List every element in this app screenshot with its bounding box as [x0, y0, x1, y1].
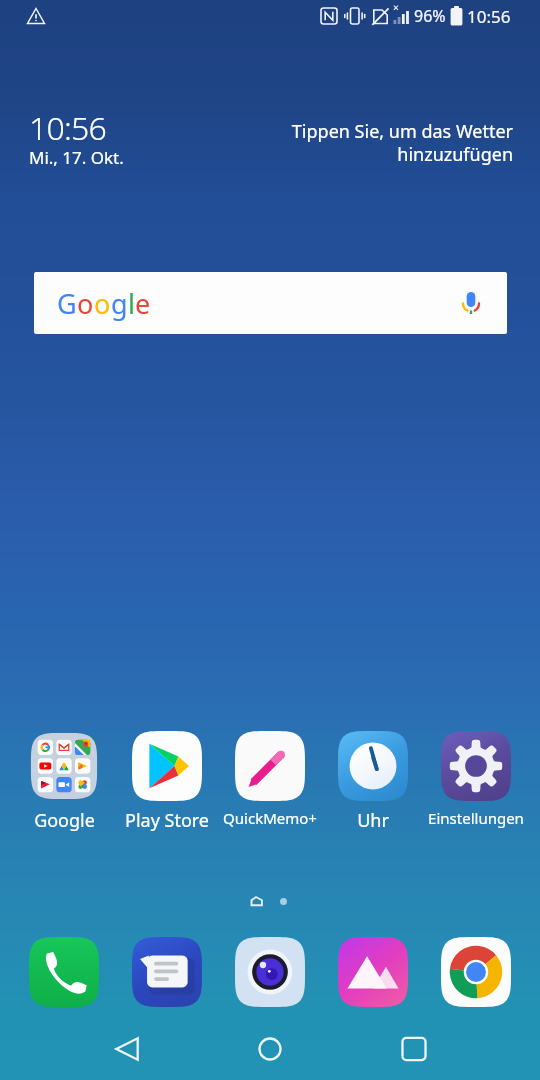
staticText: Google — [34, 808, 95, 830]
button[interactable]: Chrome — [426, 937, 526, 1007]
button[interactable]: Back — [95, 1018, 159, 1080]
staticText: QuickMemo+ — [223, 808, 317, 828]
button[interactable]: Camera — [220, 937, 320, 1007]
button[interactable]: Recents — [382, 1018, 446, 1080]
button[interactable]: QuickMemo+ — [220, 731, 320, 830]
staticText: Uhr — [357, 808, 389, 830]
button[interactable]: Tippen Sie, um das Wetter hinzuzufügen — [253, 119, 513, 166]
staticText: Einstellungen — [428, 808, 524, 828]
button[interactable]: 10:56 — [29, 106, 124, 173]
button[interactable]: Home page — [247, 892, 265, 910]
button[interactable]: Play Store — [117, 731, 217, 830]
button[interactable]: Voice search — [456, 288, 486, 318]
button[interactable]: Messages — [117, 937, 217, 1007]
button[interactable]: Phone — [14, 937, 114, 1007]
button[interactable]: Home — [238, 1018, 302, 1080]
staticText: l — [128, 285, 135, 322]
staticText: o — [94, 285, 111, 322]
staticText: o — [77, 285, 94, 322]
staticText: G — [57, 285, 77, 322]
staticText: g — [111, 285, 128, 322]
staticText: Mi., 17. Okt. — [29, 146, 124, 169]
button[interactable]: Google — [14, 731, 114, 830]
staticText: Play Store — [125, 808, 209, 830]
button[interactable]: Gallery — [323, 937, 423, 1007]
button[interactable]: Page 2 — [280, 898, 287, 905]
staticText: 96% — [414, 5, 446, 27]
staticText: e — [135, 285, 151, 322]
button[interactable]: Uhr — [323, 731, 423, 830]
staticText: 10:56 — [467, 5, 511, 28]
staticText: Tippen Sie, um das Wetter hinzuzufügen — [253, 119, 513, 166]
button[interactable]: Einstellungen — [426, 731, 526, 830]
staticText: 10:56 — [29, 106, 106, 150]
button[interactable]: G — [34, 272, 507, 334]
